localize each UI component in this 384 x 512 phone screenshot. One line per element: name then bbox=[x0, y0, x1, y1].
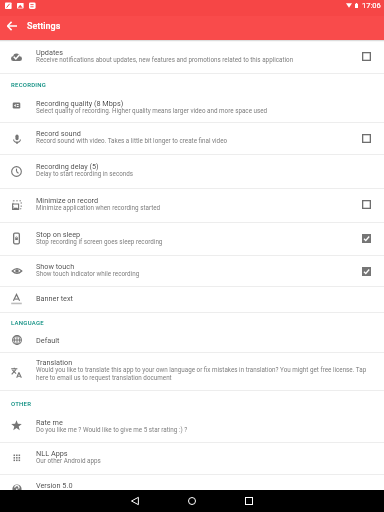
button[interactable]: Banner text bbox=[0, 287, 384, 312]
button[interactable]: Home bbox=[181, 490, 203, 512]
button[interactable]: Record sound bbox=[354, 123, 378, 154]
staticText: Banner text bbox=[36, 294, 73, 302]
staticText: Minimize application when recording star… bbox=[36, 204, 161, 212]
staticText: Stop recording if screen goes sleep reco… bbox=[36, 238, 163, 246]
staticText: Settings bbox=[27, 21, 61, 32]
staticText: Rate me bbox=[36, 418, 63, 426]
staticText: Would you like to translate this app to … bbox=[36, 366, 370, 382]
staticText: Updates bbox=[36, 48, 63, 56]
staticText: Record sound bbox=[36, 129, 81, 137]
button[interactable]: Show touch bbox=[0, 256, 384, 286]
button[interactable]: Show touch bbox=[354, 256, 378, 286]
staticText: Version 5.0 bbox=[36, 481, 73, 489]
staticText: Default bbox=[36, 336, 60, 344]
button[interactable]: Stop on sleep bbox=[354, 223, 378, 255]
staticText: LANGUAGE bbox=[11, 319, 44, 326]
button[interactable]: Minimize on record bbox=[354, 189, 378, 222]
staticText: Recording quality (8 Mbps) bbox=[36, 99, 124, 107]
button[interactable]: Rate me bbox=[0, 412, 384, 442]
button[interactable]: Back bbox=[0, 16, 24, 36]
button[interactable]: Back bbox=[124, 490, 146, 512]
staticText: OTHER bbox=[11, 400, 32, 407]
staticText: Recording delay (5) bbox=[36, 162, 99, 170]
button[interactable]: Recents bbox=[238, 490, 260, 512]
button[interactable]: Updates bbox=[0, 42, 384, 73]
staticText: RECORDING bbox=[11, 81, 47, 88]
button[interactable]: Updates bbox=[354, 42, 378, 73]
staticText: Select quality of recording. Higher qual… bbox=[36, 107, 268, 115]
staticText: Minimize on record bbox=[36, 196, 99, 204]
staticText: Receive notifications about updates, new… bbox=[36, 56, 294, 64]
button[interactable]: Recording delay (5) bbox=[0, 155, 384, 188]
staticText: Record sound with video. Takes a little … bbox=[36, 137, 228, 145]
button[interactable]: Translation bbox=[0, 353, 384, 390]
staticText: Our other Android apps bbox=[36, 457, 101, 465]
staticText: Show touch indicator while recording bbox=[36, 270, 140, 278]
button[interactable]: Minimize on record bbox=[0, 189, 384, 222]
button[interactable]: Default bbox=[0, 331, 384, 352]
staticText: NLL Apps bbox=[36, 449, 68, 457]
staticText: Translation bbox=[36, 358, 73, 366]
button[interactable]: Stop on sleep bbox=[0, 223, 384, 255]
button[interactable]: Recording quality (8 Mbps) bbox=[0, 94, 384, 122]
staticText: Delay to start recording in seconds bbox=[36, 170, 134, 178]
staticText: Do you like me ? Would like to give me 5… bbox=[36, 426, 188, 434]
staticText: Show touch bbox=[36, 262, 75, 270]
button[interactable]: Record sound bbox=[0, 123, 384, 154]
button[interactable]: Version 5.0 bbox=[0, 475, 384, 497]
button[interactable]: NLL Apps bbox=[0, 443, 384, 474]
staticText: Stop on sleep bbox=[36, 230, 81, 238]
staticText: 17:06 bbox=[362, 1, 381, 10]
